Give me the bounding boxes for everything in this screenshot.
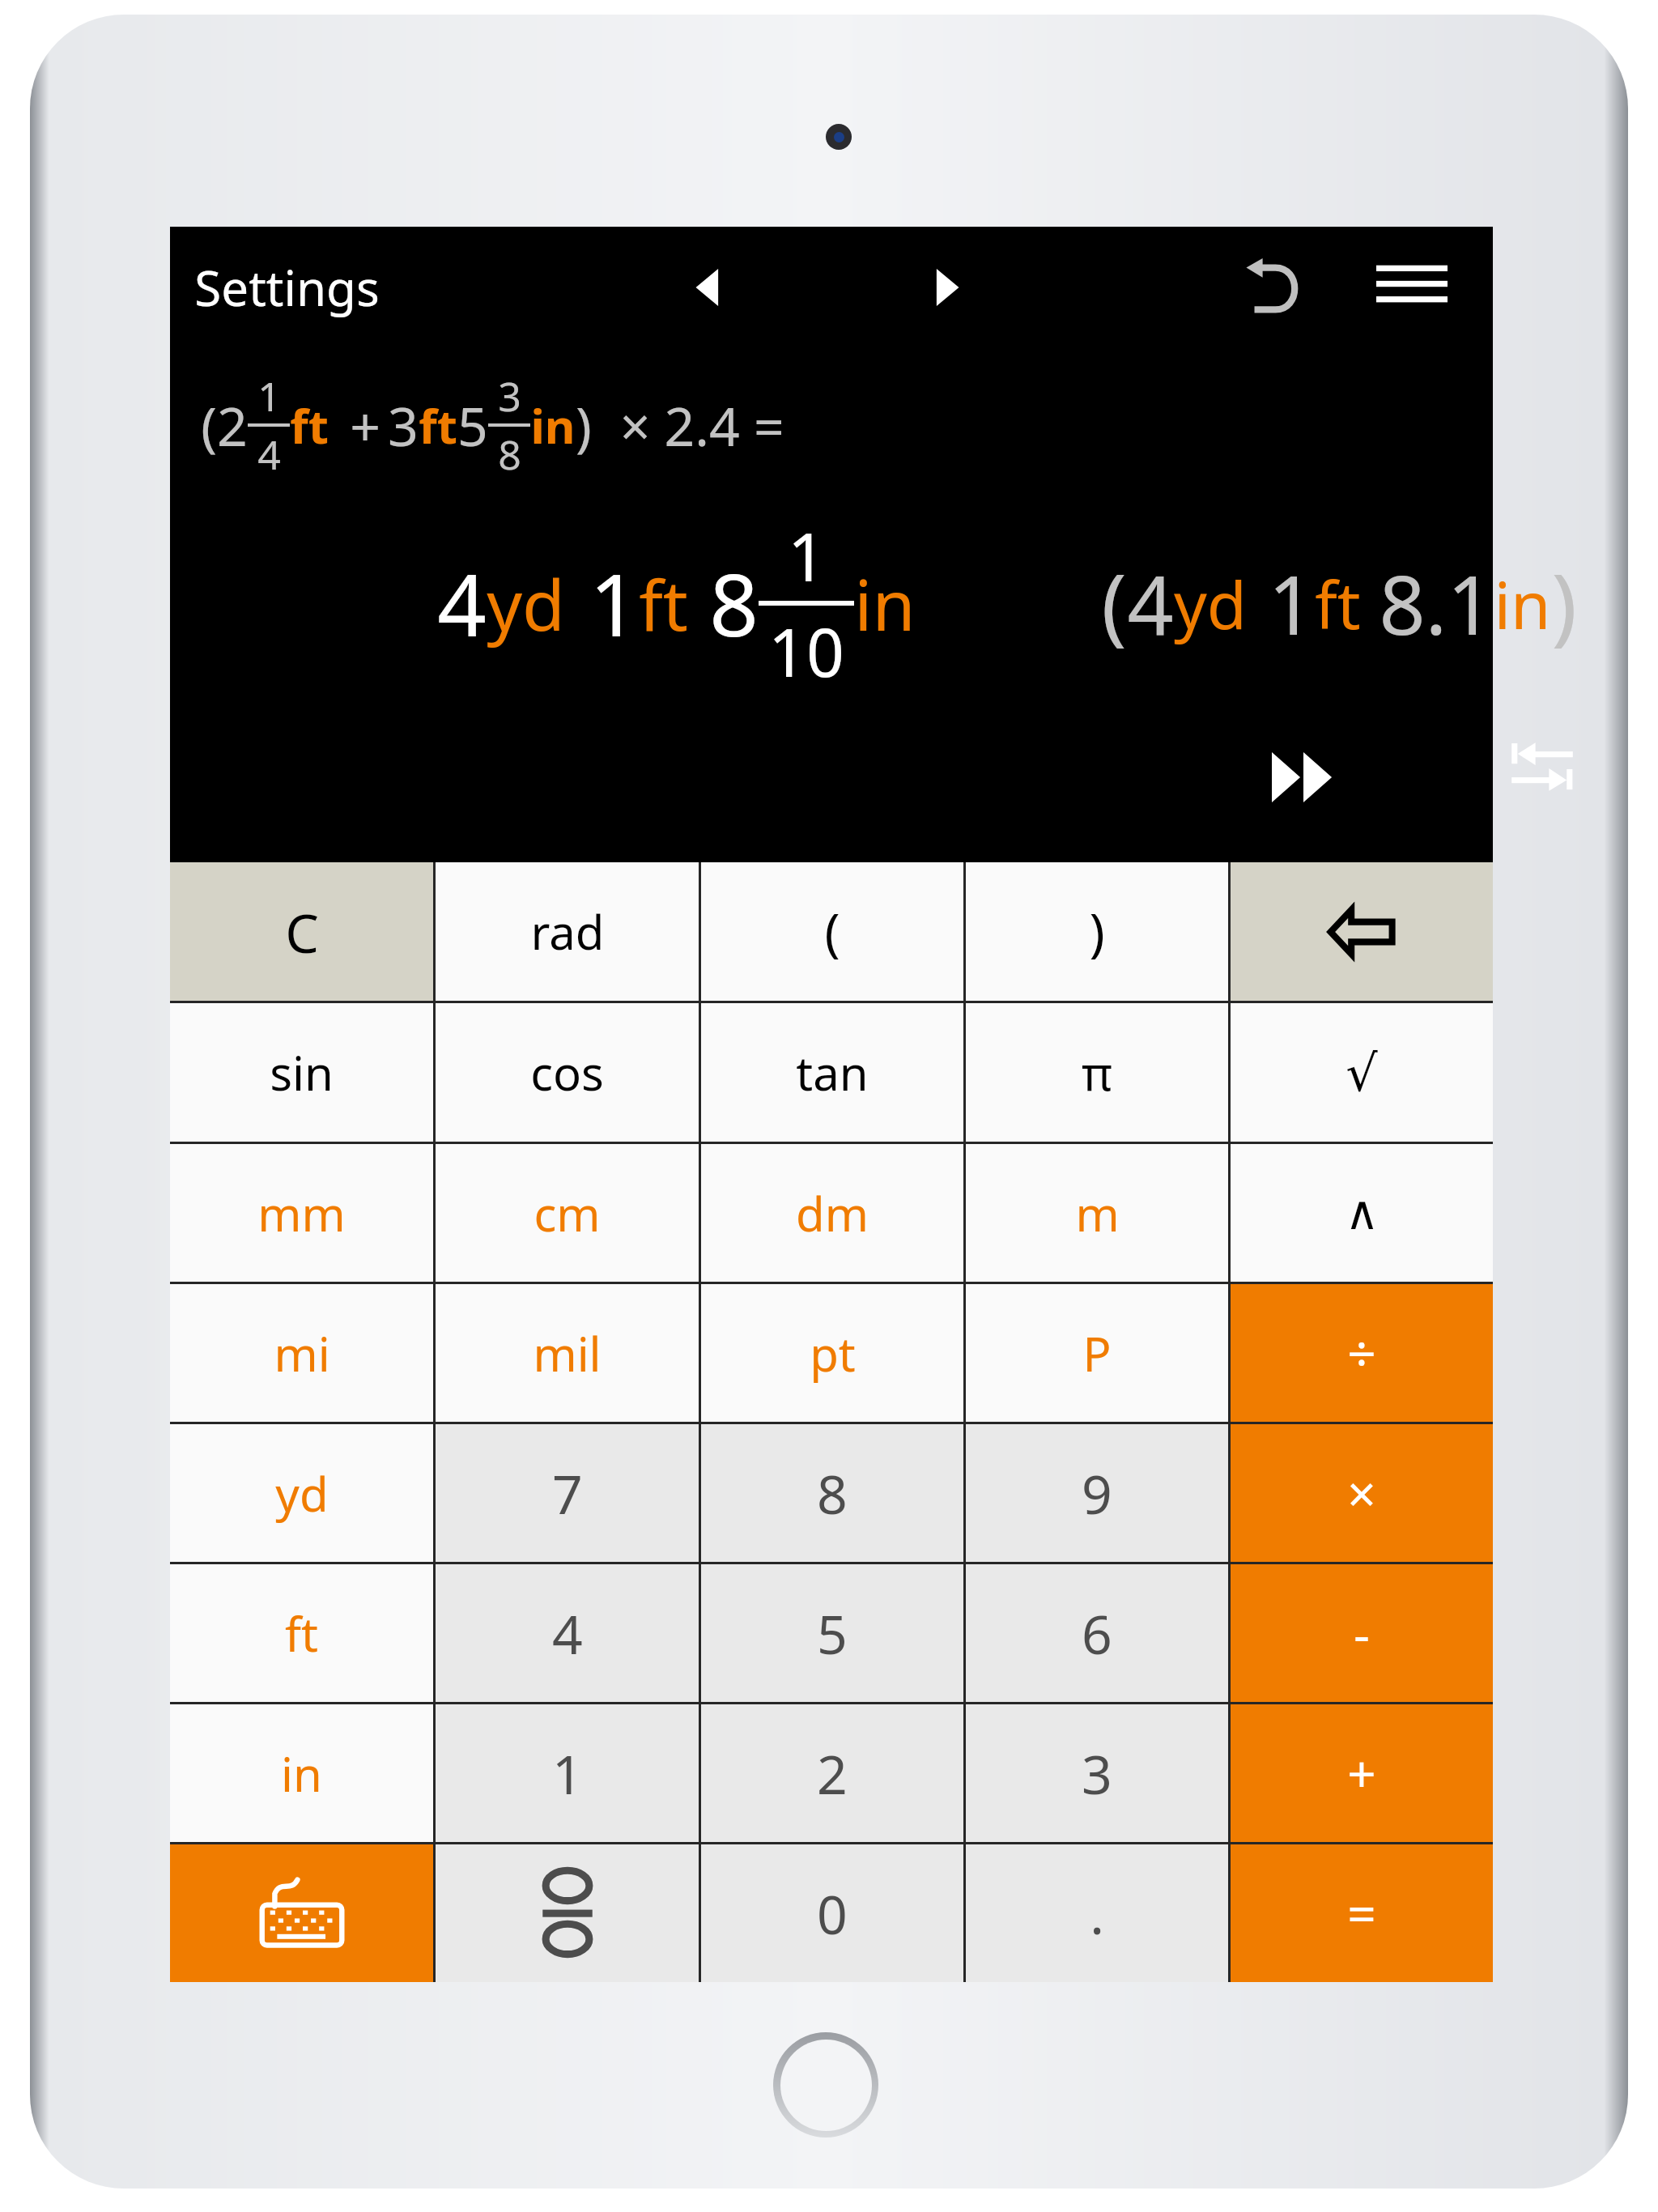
- button[interactable]: π: [966, 1003, 1228, 1142]
- staticText: ft: [419, 393, 457, 457]
- button[interactable]: Home: [773, 2032, 878, 2138]
- staticText: ÷: [1347, 1319, 1376, 1387]
- button[interactable]: =: [1231, 1844, 1493, 1982]
- button[interactable]: Swap units: [1482, 713, 1603, 834]
- staticText: ft: [1315, 559, 1361, 648]
- button[interactable]: 9: [966, 1424, 1228, 1562]
- staticText: .: [1090, 1877, 1104, 1950]
- button[interactable]: -: [1231, 1564, 1493, 1702]
- staticText: 3: [388, 389, 419, 462]
- staticText: 6: [1082, 1597, 1112, 1670]
- button[interactable]: pt: [701, 1284, 963, 1422]
- staticText: rad: [530, 900, 605, 963]
- button[interactable]: rad: [436, 862, 699, 1001]
- staticText: 5: [457, 389, 488, 462]
- staticText: ): [576, 389, 592, 462]
- button[interactable]: Next: [907, 249, 983, 325]
- button[interactable]: 5: [701, 1564, 963, 1702]
- button[interactable]: Menu: [1363, 232, 1460, 330]
- staticText: 2: [817, 1737, 848, 1810]
- staticText: 4: [257, 427, 281, 482]
- staticText: mil: [533, 1321, 602, 1385]
- button[interactable]: yd: [170, 1424, 433, 1562]
- button[interactable]: Undo: [1230, 243, 1319, 332]
- staticText: 8: [709, 545, 759, 661]
- staticText: yd: [487, 556, 565, 651]
- button[interactable]: ÷: [1231, 1284, 1493, 1422]
- button[interactable]: P: [966, 1284, 1228, 1422]
- button[interactable]: 2: [701, 1704, 963, 1842]
- button[interactable]: mil: [436, 1284, 699, 1422]
- button[interactable]: ): [966, 862, 1228, 1001]
- staticText: in: [1494, 559, 1551, 648]
- button[interactable]: sin: [170, 1003, 433, 1142]
- button[interactable]: mm: [170, 1144, 433, 1282]
- staticText: 5: [817, 1597, 848, 1670]
- staticText: 7: [552, 1457, 583, 1529]
- staticText: ft: [639, 556, 688, 651]
- staticText: (2: [201, 389, 248, 462]
- staticText: P: [1082, 1321, 1112, 1385]
- staticText: ft: [290, 393, 329, 457]
- button[interactable]: Previous: [672, 249, 748, 325]
- button[interactable]: in: [170, 1704, 433, 1842]
- staticText: 9: [1082, 1457, 1112, 1529]
- button[interactable]: Keyboard: [170, 1844, 433, 1982]
- button[interactable]: ∧: [1231, 1144, 1493, 1282]
- staticText: 4: [552, 1597, 583, 1670]
- button[interactable]: 4: [436, 1564, 699, 1702]
- staticText: 10: [768, 606, 844, 696]
- button[interactable]: C: [170, 862, 433, 1001]
- staticText: √: [1346, 1044, 1378, 1102]
- staticText: 3: [1082, 1737, 1112, 1810]
- button[interactable]: 0: [701, 1844, 963, 1982]
- staticText: 4: [437, 545, 487, 661]
- staticText: cm: [534, 1181, 601, 1245]
- button[interactable]: 6: [966, 1564, 1228, 1702]
- button[interactable]: Backspace: [1231, 862, 1493, 1001]
- staticText: pt: [810, 1321, 856, 1385]
- staticText: 1: [552, 1737, 583, 1810]
- staticText: 8: [817, 1457, 848, 1529]
- staticText: ×: [1347, 1459, 1376, 1527]
- button[interactable]: dm: [701, 1144, 963, 1282]
- button[interactable]: Fraction: [436, 1844, 699, 1982]
- staticText: ): [1089, 896, 1105, 967]
- button[interactable]: Fast forward: [1243, 717, 1364, 838]
- staticText: tan: [796, 1040, 869, 1104]
- button[interactable]: Settings: [194, 254, 380, 321]
- button[interactable]: √: [1231, 1003, 1493, 1142]
- button[interactable]: cos: [436, 1003, 699, 1142]
- button[interactable]: .: [966, 1844, 1228, 1982]
- staticText: C: [285, 895, 319, 968]
- button[interactable]: tan: [701, 1003, 963, 1142]
- staticText: in: [854, 556, 916, 651]
- button[interactable]: mi: [170, 1284, 433, 1422]
- staticText: sin: [270, 1040, 334, 1104]
- staticText: cos: [530, 1040, 604, 1104]
- staticText: ): [1551, 546, 1577, 661]
- staticText: dm: [796, 1181, 869, 1245]
- staticText: π: [1082, 1040, 1112, 1104]
- button[interactable]: 7: [436, 1424, 699, 1562]
- staticText: =: [1347, 1879, 1376, 1947]
- button[interactable]: +: [1231, 1704, 1493, 1842]
- button[interactable]: 8: [701, 1424, 963, 1562]
- button[interactable]: 1: [436, 1704, 699, 1842]
- button[interactable]: m: [966, 1144, 1228, 1282]
- staticText: 8: [498, 427, 521, 482]
- staticText: × 2.4 =: [592, 389, 784, 462]
- button[interactable]: 3: [966, 1704, 1228, 1842]
- button[interactable]: (: [701, 862, 963, 1001]
- staticText: 3: [498, 368, 521, 423]
- button[interactable]: ×: [1231, 1424, 1493, 1562]
- button[interactable]: ft: [170, 1564, 433, 1702]
- staticText: (: [824, 896, 840, 967]
- staticText: in: [281, 1742, 322, 1806]
- staticText: 0: [817, 1877, 848, 1950]
- staticText: yd: [1174, 559, 1247, 648]
- staticText: 1: [788, 510, 826, 601]
- staticText: in: [530, 393, 576, 457]
- staticText: yd: [275, 1461, 329, 1525]
- button[interactable]: cm: [436, 1144, 699, 1282]
